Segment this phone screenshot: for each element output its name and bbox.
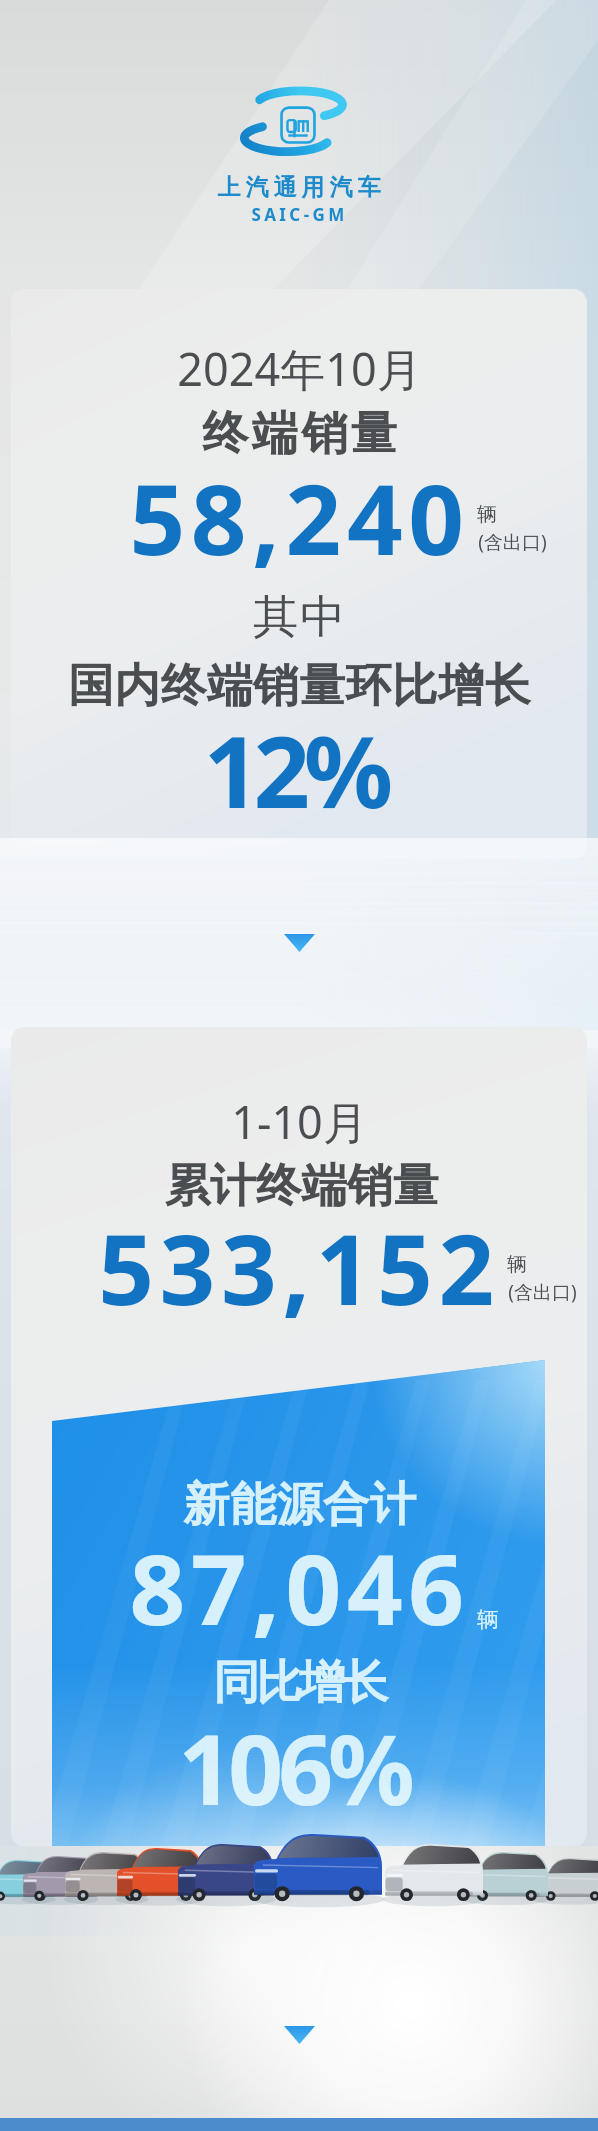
staticText: 1-10月 bbox=[231, 1091, 368, 1152]
staticText: 12% bbox=[203, 702, 387, 837]
staticText: 上汽通用汽车 bbox=[215, 173, 383, 202]
staticText: 辆 bbox=[477, 1606, 499, 1634]
staticText: 533,152 bbox=[98, 1201, 500, 1334]
staticText: 其中 bbox=[252, 589, 346, 646]
staticText: 2024年10月 bbox=[177, 338, 422, 399]
staticText: 辆 bbox=[477, 502, 497, 527]
button[interactable]: SAIC-GM logo bbox=[237, 84, 359, 160]
staticText: 国内终端销量环比增长 bbox=[68, 657, 531, 715]
button[interactable]: Scroll down bbox=[284, 934, 315, 952]
staticText: 58,240 bbox=[129, 451, 470, 584]
staticText: 同比增长 bbox=[213, 1654, 385, 1712]
staticText: (含出口) bbox=[478, 529, 547, 555]
staticText: 终端销量 bbox=[202, 405, 401, 463]
button[interactable]: Scroll down bbox=[284, 2026, 315, 2044]
staticText: 新能源合计 bbox=[183, 1476, 416, 1534]
staticText: 累计终端销量 bbox=[164, 1157, 439, 1215]
staticText: 106% bbox=[178, 1702, 410, 1833]
staticText: (含出口) bbox=[508, 1279, 577, 1305]
staticText: 87,046 bbox=[129, 1521, 470, 1654]
staticText: 辆 bbox=[507, 1252, 527, 1277]
staticText: SAIC-GM bbox=[251, 203, 348, 226]
